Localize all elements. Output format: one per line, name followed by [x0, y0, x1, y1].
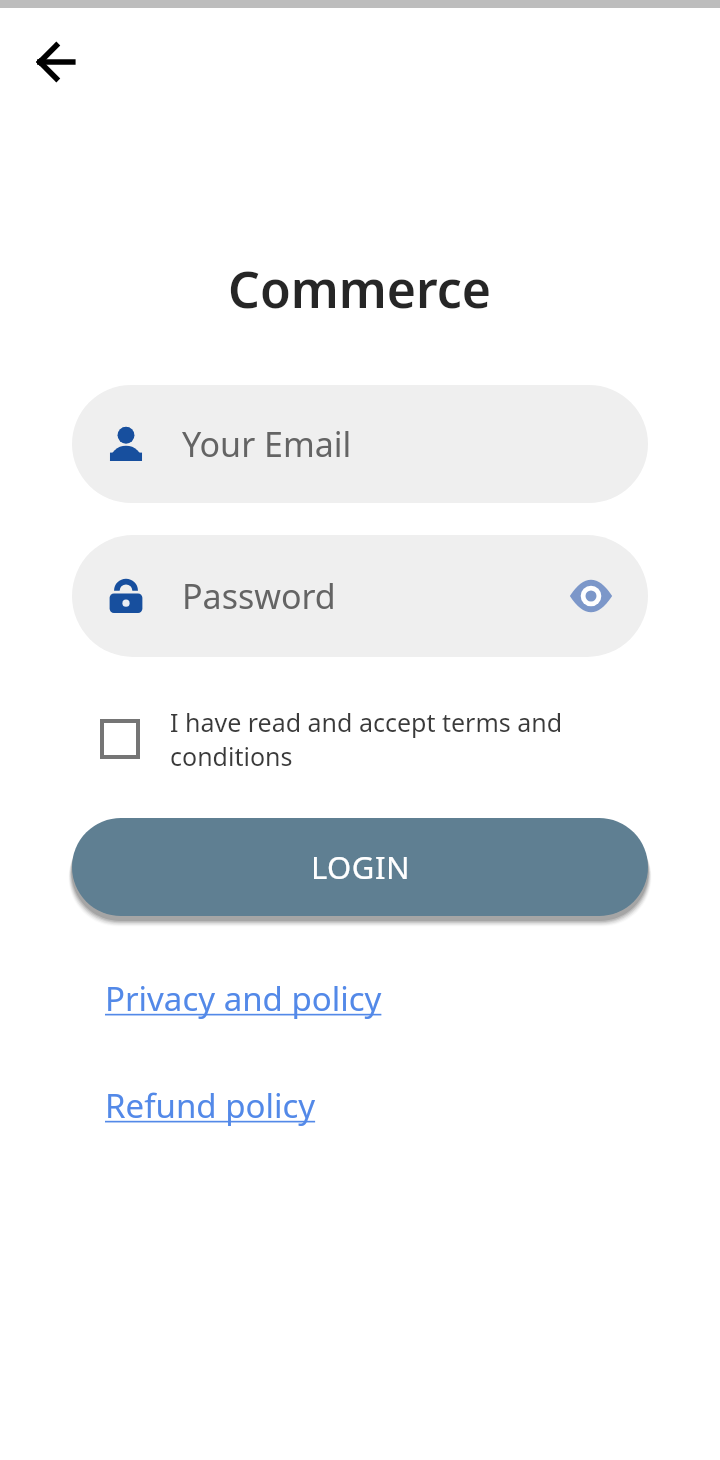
button[interactable]: Refund policy [105, 1083, 316, 1128]
button[interactable]: Your Email [72, 385, 648, 503]
button[interactable]: Show password [560, 565, 622, 627]
button[interactable]: Password [72, 535, 648, 657]
button[interactable]: LOGIN [72, 818, 648, 916]
staticText: LOGIN [311, 846, 410, 888]
staticText: I have read and accept terms and conditi… [170, 705, 680, 773]
button[interactable]: I have read and accept terms and conditi… [102, 705, 680, 773]
staticText: Your Email [182, 421, 352, 467]
staticText: Commerce [228, 255, 492, 323]
button[interactable]: Back [24, 29, 90, 95]
button[interactable]: Privacy and policy [105, 976, 382, 1021]
staticText: Privacy and policy [105, 976, 382, 1021]
staticText: Password [182, 573, 336, 619]
staticText: Refund policy [105, 1083, 316, 1128]
